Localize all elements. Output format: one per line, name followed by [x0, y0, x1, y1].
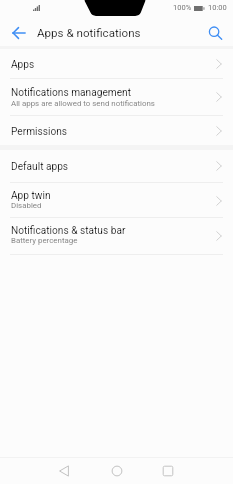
staticText: All apps are allowed to send notificatio… [11, 99, 155, 108]
staticText: Apps [11, 59, 35, 71]
staticText: Notifications & status bar [11, 225, 126, 237]
staticText: Disabled [11, 201, 42, 210]
button[interactable]: Search [203, 20, 227, 44]
button[interactable]: Recent apps [156, 459, 180, 483]
staticText: Battery percentage [11, 236, 78, 245]
button[interactable]: Home [105, 459, 129, 483]
button[interactable]: Notifications & status bar [0, 218, 233, 254]
staticText: 10:00 [208, 3, 227, 12]
button[interactable]: Apps [0, 49, 233, 78]
staticText: Default apps [11, 161, 69, 173]
button[interactable]: App twin [0, 183, 233, 218]
staticText: Permissions [11, 126, 68, 138]
button[interactable]: Notifications management [0, 79, 233, 115]
button[interactable]: Default apps [0, 150, 233, 181]
staticText: Notifications management [11, 87, 131, 99]
button[interactable]: Back [52, 459, 76, 483]
staticText: App twin [11, 190, 51, 202]
button[interactable]: Back [6, 21, 30, 45]
button[interactable]: Permissions [0, 116, 233, 146]
staticText: 100% [173, 3, 192, 12]
staticText: Apps & notifications [37, 26, 141, 40]
